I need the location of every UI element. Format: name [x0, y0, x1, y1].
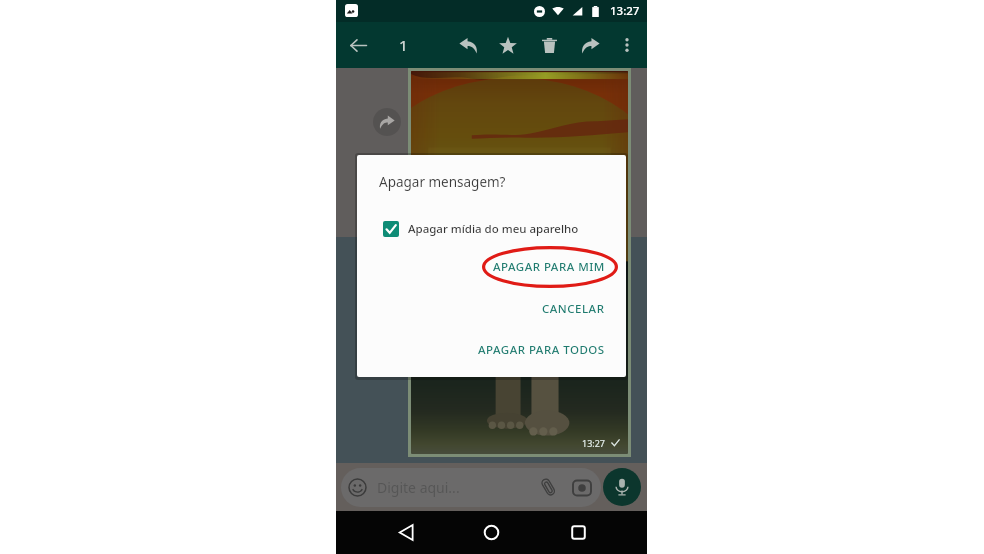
- button[interactable]: Star: [491, 22, 525, 68]
- button[interactable]: More options: [610, 22, 644, 68]
- staticText: 13:27: [582, 437, 606, 449]
- button[interactable]: Reply: [451, 22, 485, 68]
- button[interactable]: Digite aqui...: [341, 468, 601, 507]
- button[interactable]: Back: [385, 511, 427, 554]
- button[interactable]: APAGAR PARA TODOS: [357, 337, 626, 363]
- button[interactable]: APAGAR PARA MIM: [357, 254, 626, 280]
- staticText: Digite aqui...: [377, 478, 460, 497]
- button[interactable]: Back: [341, 22, 375, 68]
- staticText: CANCELAR: [542, 301, 605, 317]
- button[interactable]: Apagar mídia do meu aparelho: [357, 218, 626, 240]
- staticText: 1: [399, 35, 408, 55]
- button[interactable]: Recents: [557, 511, 599, 554]
- staticText: 13:27: [610, 3, 640, 19]
- staticText: APAGAR PARA TODOS: [478, 342, 605, 358]
- button[interactable]: Voice message: [603, 468, 641, 506]
- button[interactable]: CANCELAR: [357, 296, 626, 322]
- button[interactable]: Forward: [573, 22, 607, 68]
- button[interactable]: Delete: [532, 22, 566, 68]
- staticText: Apagar mídia do meu aparelho: [408, 221, 579, 237]
- button[interactable]: Home: [470, 511, 512, 554]
- staticText: APAGAR PARA MIM: [493, 259, 605, 275]
- button[interactable]: Forward message: [373, 108, 401, 136]
- staticText: Apagar mensagem?: [379, 173, 506, 191]
